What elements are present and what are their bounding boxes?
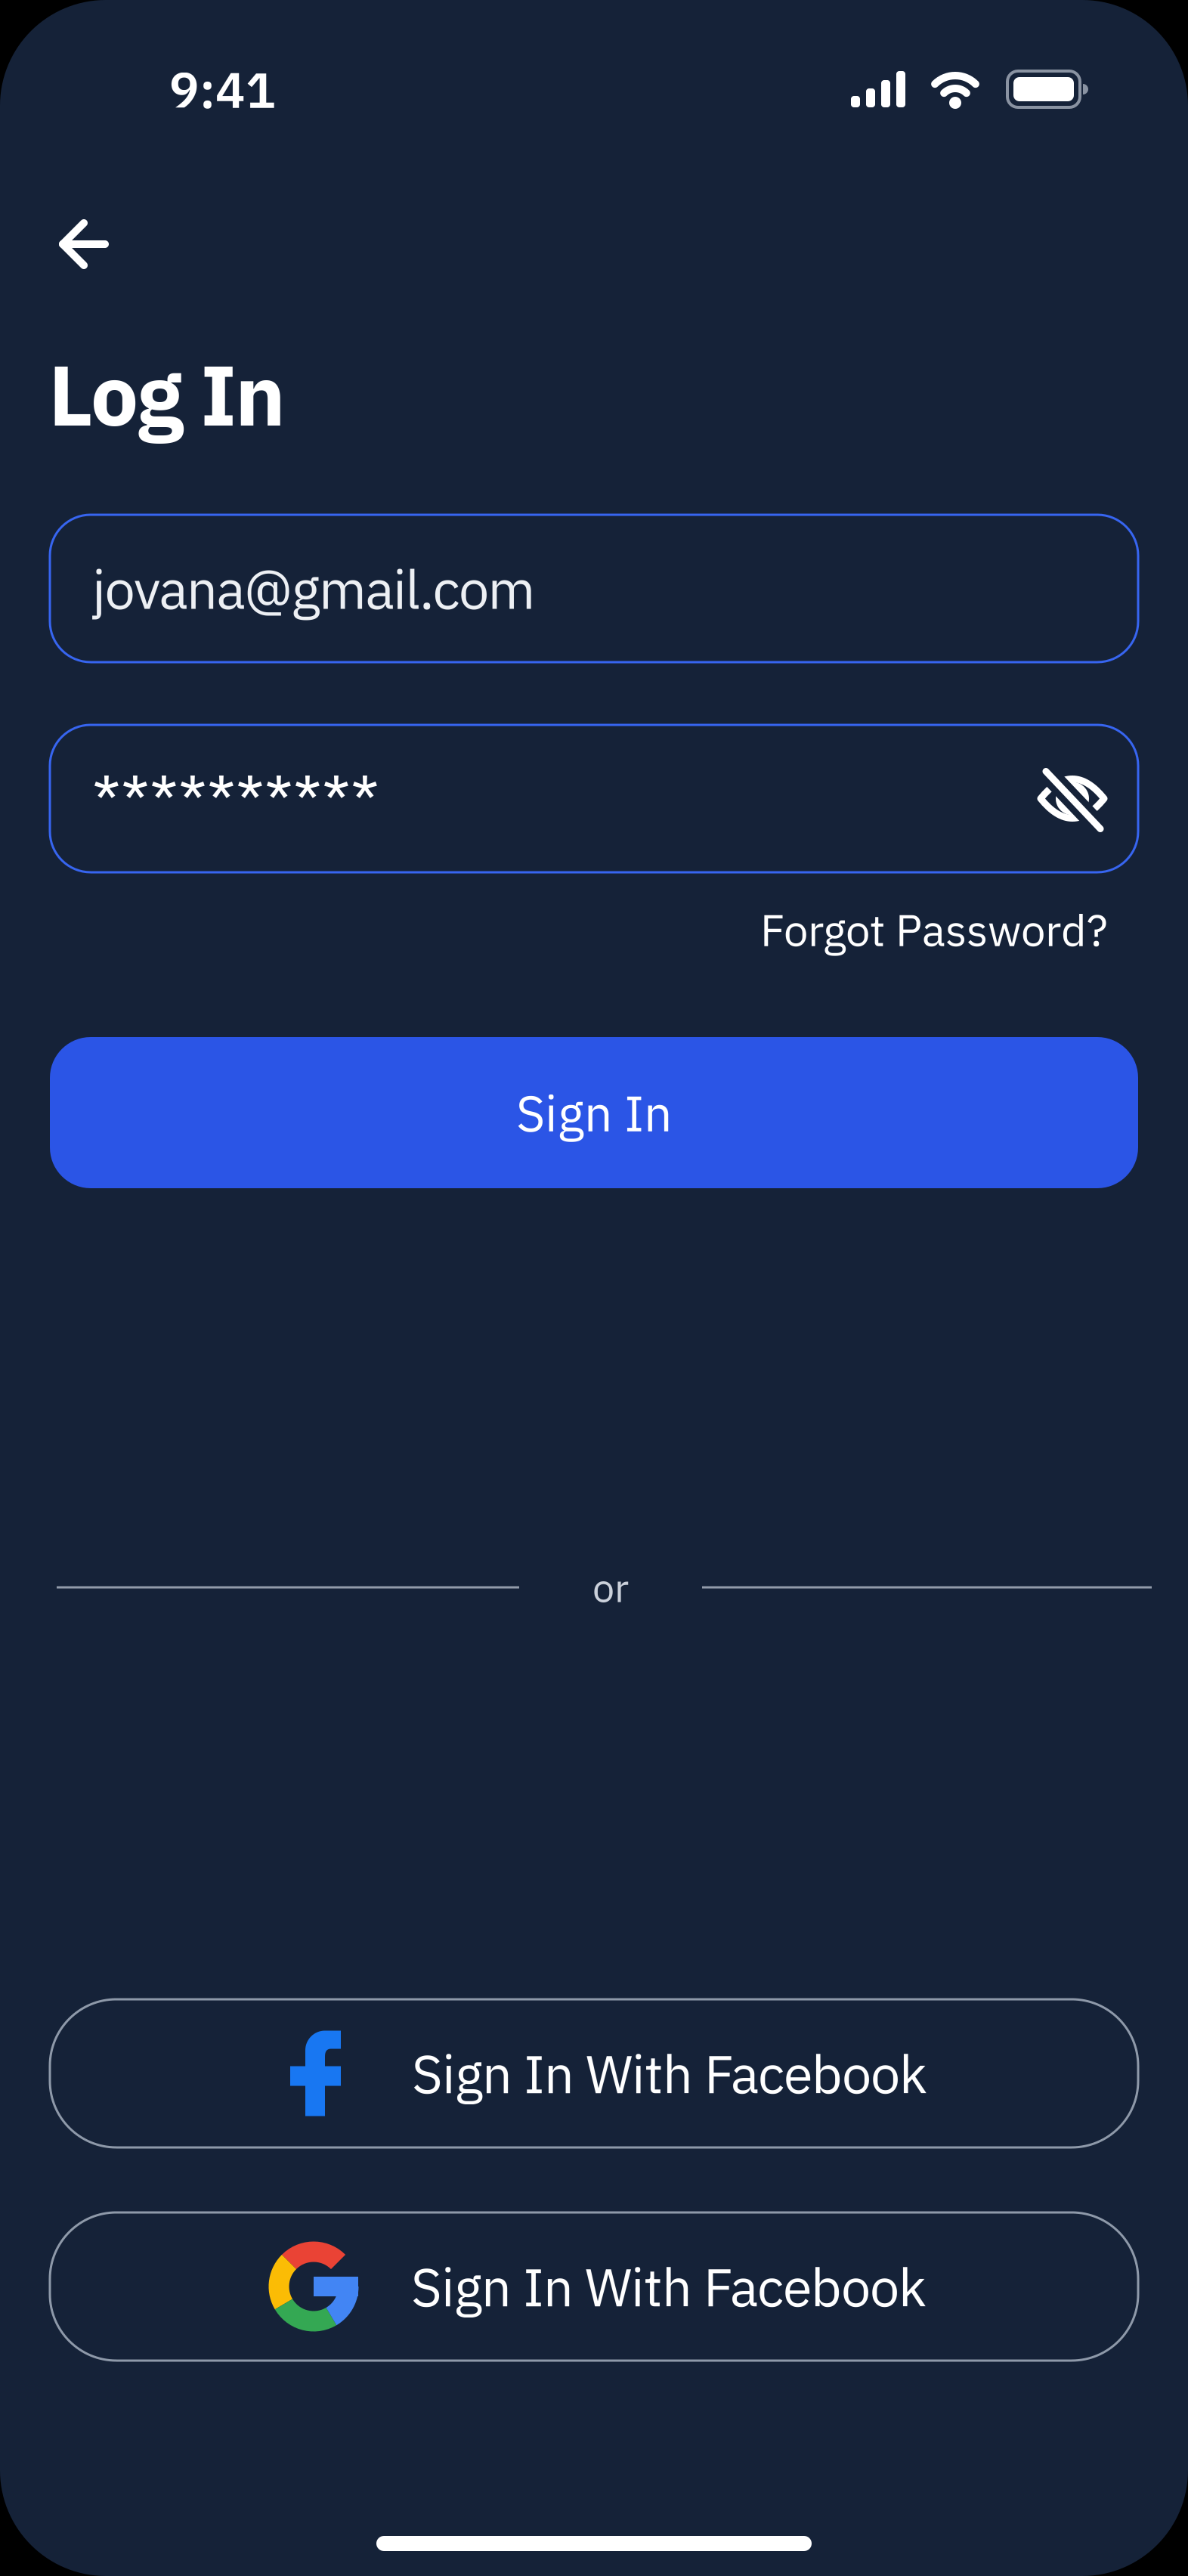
staticText: 9:41: [169, 58, 276, 121]
button[interactable]: Sign In With Facebook: [50, 2212, 1138, 2361]
staticText: jovana@gmail.com: [92, 554, 535, 623]
button[interactable]: [57, 220, 110, 268]
staticText: Sign In With Facebook: [411, 2253, 927, 2320]
button[interactable]: Sign In With Facebook: [50, 1999, 1138, 2147]
staticText: Forgot Password?: [760, 902, 1108, 957]
staticText: Sign In With Facebook: [412, 2040, 927, 2107]
staticText: or: [592, 1562, 629, 1612]
staticText: Log In: [48, 340, 286, 447]
staticText: Sign In: [516, 1081, 672, 1144]
staticText: **********: [92, 758, 379, 839]
button[interactable]: [1037, 770, 1108, 827]
button[interactable]: Forgot Password?: [760, 902, 1108, 957]
button[interactable]: Sign In: [50, 1037, 1138, 1188]
